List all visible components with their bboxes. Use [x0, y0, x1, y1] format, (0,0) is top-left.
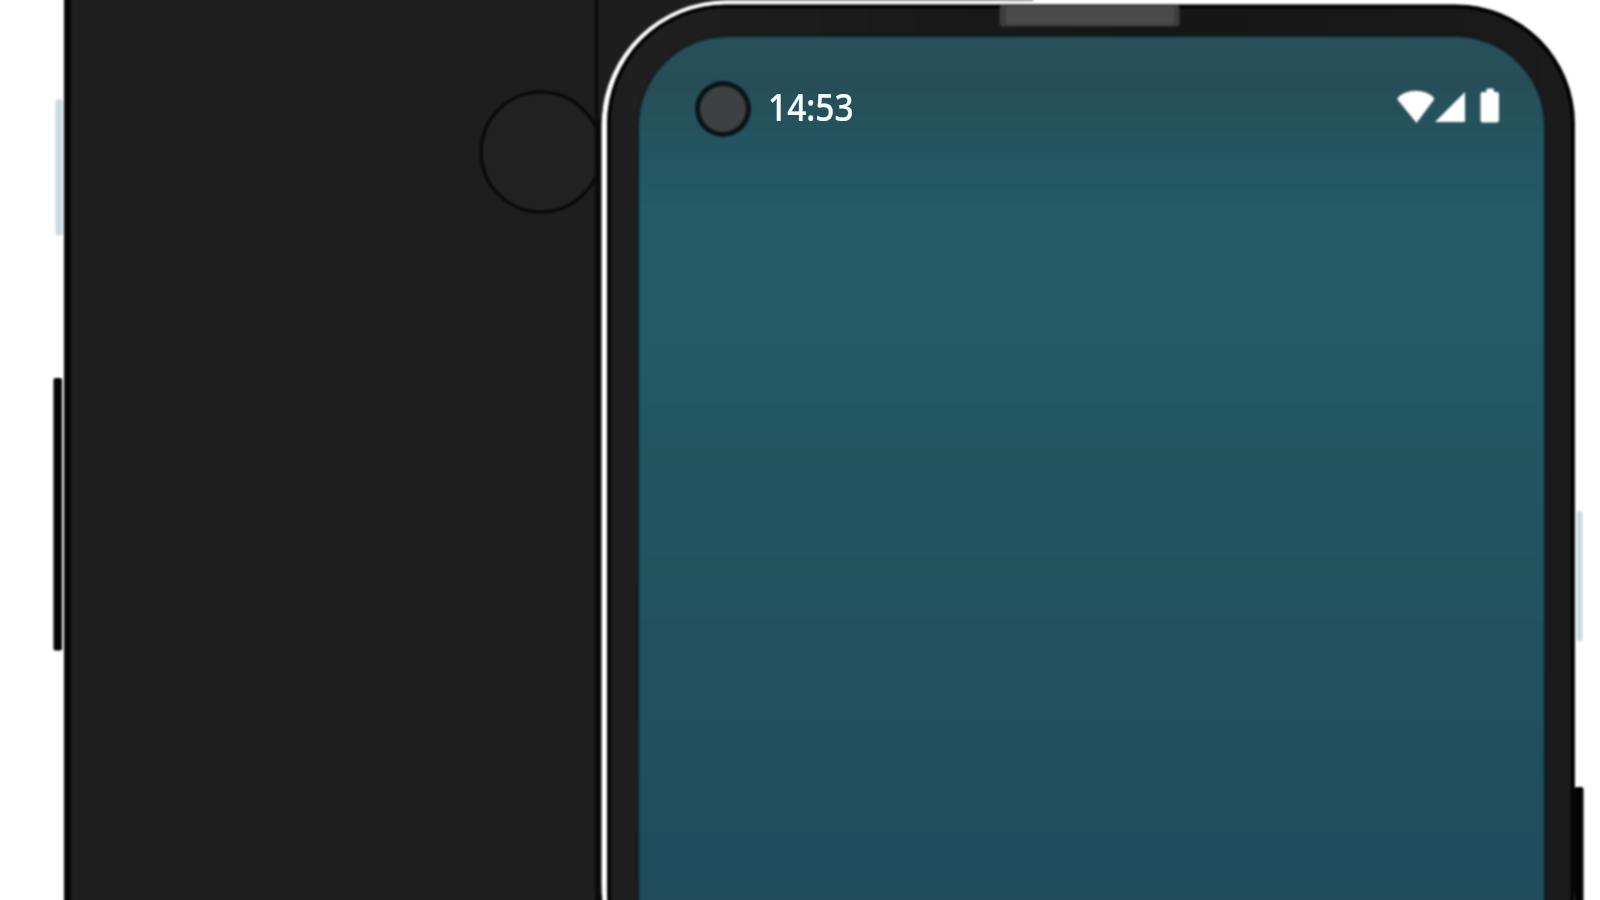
- button[interactable]: Power button: [50, 96, 68, 238]
- button[interactable]: Mobile signal: [1432, 84, 1470, 128]
- button[interactable]: Wi-Fi: [1392, 84, 1438, 128]
- staticText: 14:53: [768, 80, 854, 132]
- button[interactable]: Volume rocker: [48, 375, 66, 655]
- button[interactable]: Power button: [1572, 508, 1588, 646]
- button[interactable]: Earpiece speaker: [999, 2, 1181, 30]
- button[interactable]: Volume rocker: [1570, 784, 1588, 900]
- button[interactable]: Fingerprint sensor: [479, 90, 603, 214]
- button[interactable]: Battery: [1473, 84, 1505, 128]
- button[interactable]: [763, 85, 859, 121]
